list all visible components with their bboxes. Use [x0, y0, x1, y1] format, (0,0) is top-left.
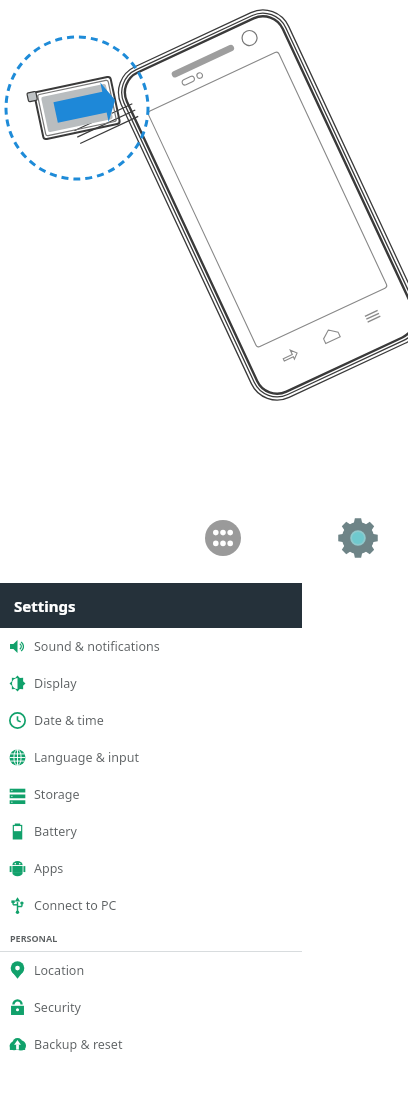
staticText: PERSONAL [10, 932, 58, 944]
staticText: Settings [14, 596, 76, 616]
staticText: Location [34, 962, 85, 979]
staticText: Backup & reset [34, 1036, 123, 1053]
button[interactable]: Language & input [0, 739, 302, 776]
staticText: Date & time [34, 712, 104, 729]
button[interactable]: Settings [0, 583, 302, 628]
button[interactable]: Location [0, 952, 302, 989]
staticText: Display [34, 675, 77, 692]
button[interactable]: Sound & notifications [0, 628, 302, 665]
button[interactable]: Display [0, 665, 302, 702]
button[interactable]: Apps [0, 850, 302, 887]
button[interactable]: Settings [338, 518, 378, 558]
button[interactable]: Date & time [0, 702, 302, 739]
button[interactable]: Battery [0, 813, 302, 850]
button[interactable]: Apps [205, 520, 241, 556]
staticText: Battery [34, 823, 77, 840]
button[interactable]: Backup & reset [0, 1026, 302, 1063]
button[interactable]: Storage [0, 776, 302, 813]
staticText: Sound & notifications [34, 638, 160, 655]
button[interactable]: Security [0, 989, 302, 1026]
button[interactable]: Connect to PC [0, 887, 302, 924]
staticText: Connect to PC [34, 897, 117, 914]
staticText: Security [34, 999, 81, 1016]
staticText: Apps [34, 860, 64, 877]
staticText: Storage [34, 786, 80, 803]
staticText: Language & input [34, 749, 139, 766]
